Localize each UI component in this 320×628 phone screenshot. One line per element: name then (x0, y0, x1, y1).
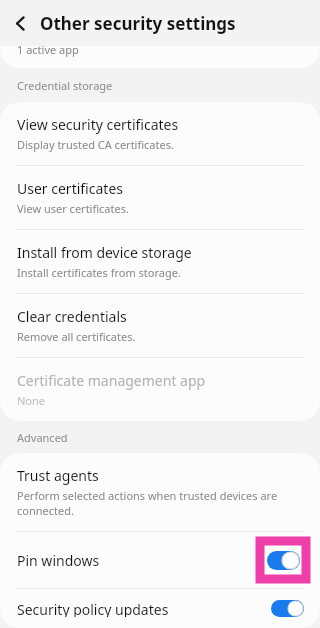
staticText: User certificates (17, 179, 123, 198)
staticText: Other security settings (40, 12, 236, 35)
staticText: Remove all certificates. (17, 329, 136, 344)
button[interactable]: User certificates (0, 166, 320, 229)
staticText: Perform selected actions when trusted de… (17, 488, 303, 518)
button[interactable]: Certificate management app (0, 358, 320, 421)
button[interactable]: Security policy updates (0, 589, 320, 628)
staticText: Pin windows (17, 551, 100, 570)
button[interactable]: View security certificates (0, 102, 320, 165)
staticText: Install certificates from storage. (17, 265, 181, 280)
staticText: Clear credentials (17, 307, 127, 326)
button[interactable]: Install from device storage (0, 230, 320, 293)
staticText: View user certificates. (17, 201, 129, 216)
staticText: Credential storage (17, 78, 113, 93)
button[interactable]: Pin windows (0, 532, 320, 588)
staticText: Advanced (17, 430, 68, 445)
button[interactable]: Clear credentials (0, 294, 320, 357)
staticText: None (17, 393, 46, 408)
button[interactable]: Security policy updates (265, 600, 309, 617)
button[interactable]: Pin windows (257, 538, 309, 582)
staticText: Display trusted CA certificates. (17, 137, 174, 152)
button[interactable]: Back (0, 3, 40, 43)
staticText: Security policy updates (17, 600, 169, 617)
staticText: View security certificates (17, 115, 179, 134)
staticText: 1 active app (17, 46, 79, 57)
staticText: Install from device storage (17, 243, 192, 262)
button[interactable]: 1 active app (0, 46, 320, 68)
staticText: Trust agents (17, 466, 99, 485)
button[interactable]: Trust agents (0, 453, 320, 531)
staticText: Certificate management app (17, 371, 206, 390)
